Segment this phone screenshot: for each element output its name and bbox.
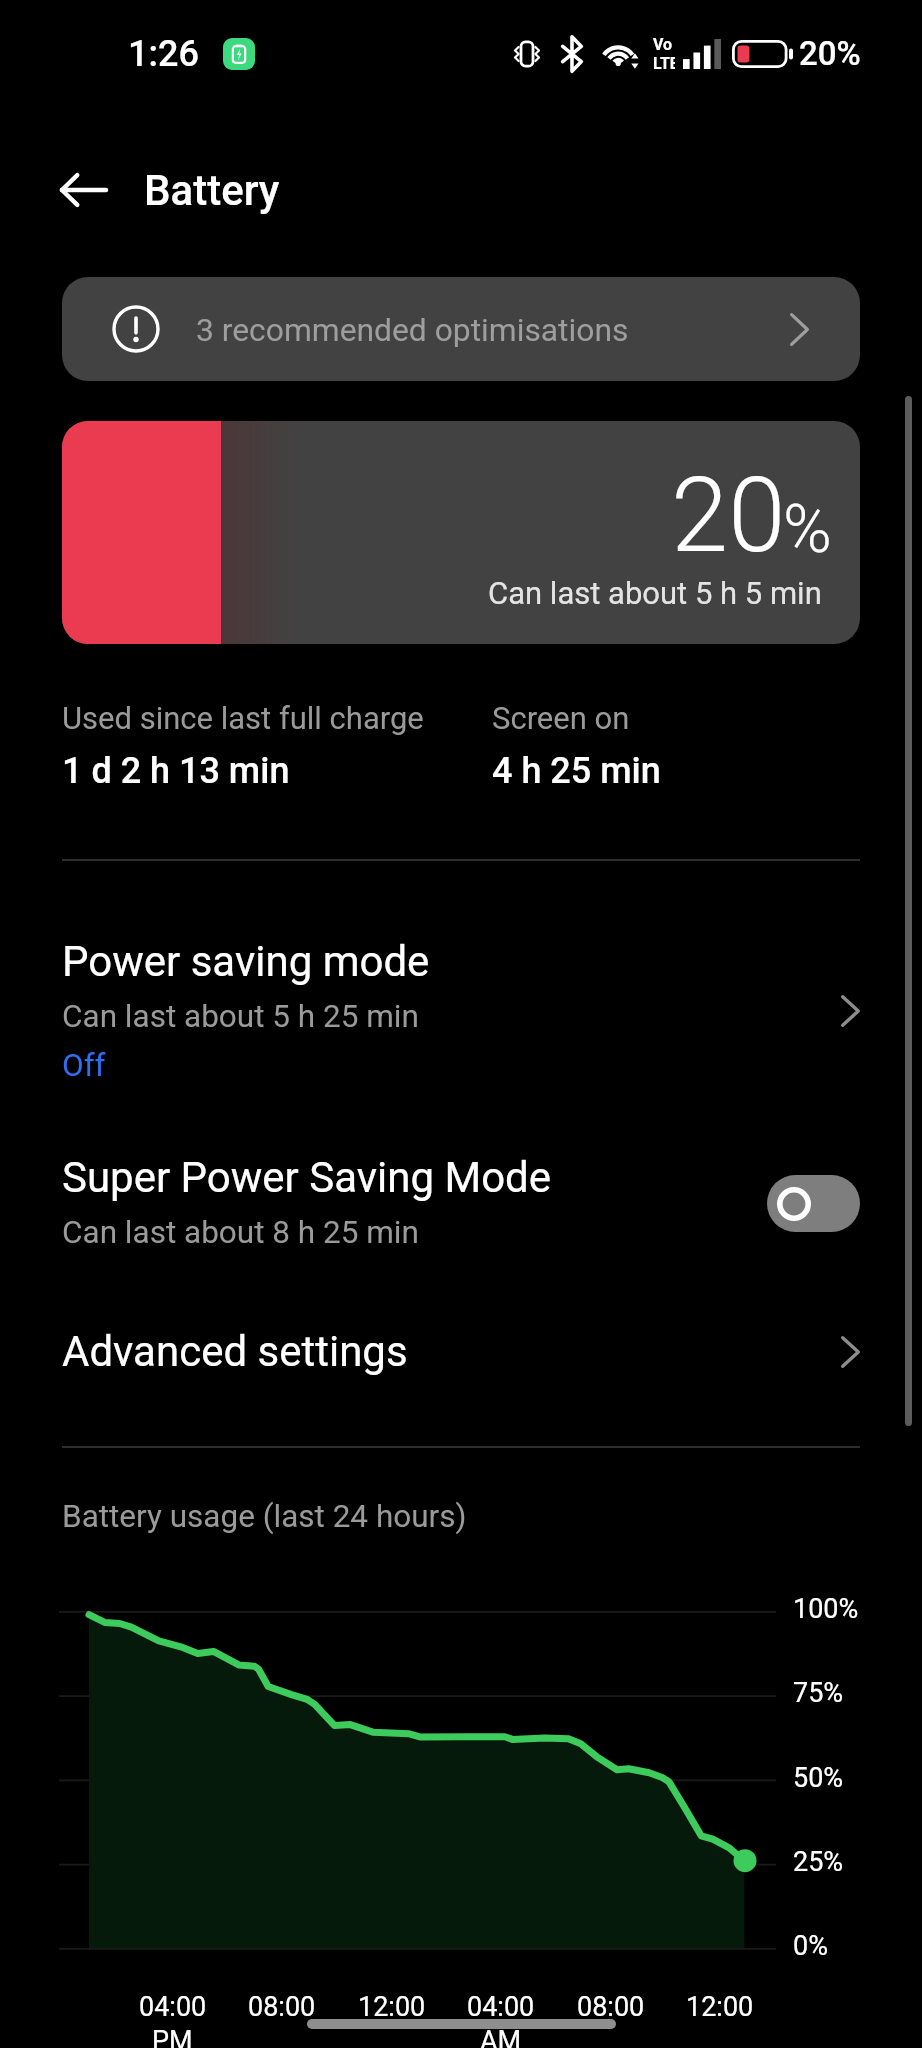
staticText: 04:00: [467, 1991, 535, 2023]
staticText: Can last about 8 h 25 min: [62, 1214, 419, 1251]
staticText: 20: [671, 455, 786, 576]
staticText: Advanced settings: [62, 1327, 841, 1376]
staticText: 12:00: [686, 1991, 754, 2023]
button[interactable]: Super Power Saving Mode: [0, 1153, 922, 1251]
staticText: 3 recommended optimisations: [196, 311, 629, 348]
staticText: PM: [152, 2025, 193, 2048]
button[interactable]: Super Power Saving Mode toggle: [767, 1175, 860, 1232]
staticText: Can last about 5 h 5 min: [488, 575, 822, 611]
staticText: Vo: [653, 35, 673, 54]
staticText: 12:00: [358, 1991, 426, 2023]
staticText: 08:00: [577, 1991, 645, 2023]
staticText: AM: [480, 2025, 522, 2048]
staticText: 75%: [793, 1677, 844, 1709]
staticText: Off: [62, 1047, 106, 1084]
button[interactable]: 3 recommended optimisations: [62, 277, 860, 381]
staticText: 25%: [793, 1846, 844, 1878]
staticText: LTE: [653, 54, 675, 73]
button[interactable]: Power saving mode: [0, 937, 922, 1084]
staticText: Used since last full charge: [62, 700, 424, 736]
staticText: 4 h 25 min: [492, 750, 661, 792]
staticText: 1 d 2 h 13 min: [62, 750, 290, 792]
button[interactable]: Back: [46, 152, 122, 228]
staticText: Can last about 5 h 25 min: [62, 998, 419, 1035]
staticText: Screen on: [492, 700, 630, 736]
button[interactable]: 20: [62, 421, 860, 644]
staticText: Super Power Saving Mode: [62, 1153, 552, 1202]
staticText: 20%: [799, 34, 861, 73]
staticText: 50%: [793, 1762, 844, 1794]
staticText: Battery usage (last 24 hours): [62, 1498, 467, 1535]
staticText: 04:00: [139, 1991, 207, 2023]
staticText: Battery: [144, 166, 280, 215]
staticText: 0%: [793, 1930, 828, 1962]
button[interactable]: Advanced settings: [0, 1327, 922, 1376]
staticText: 1:26: [128, 33, 199, 75]
staticText: 100%: [793, 1593, 859, 1625]
staticText: 08:00: [248, 1991, 316, 2023]
staticText: Power saving mode: [62, 937, 430, 986]
staticText: %: [783, 491, 832, 568]
